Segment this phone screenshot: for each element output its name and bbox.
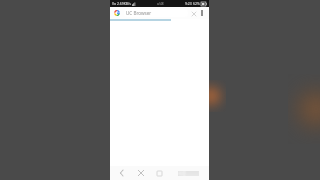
button[interactable]: Recent apps <box>150 166 169 180</box>
staticText: 62% <box>193 1 200 6</box>
button[interactable]: Google Search <box>113 9 121 17</box>
button[interactable]: Back <box>111 166 131 180</box>
button[interactable]: UC Browser <box>124 9 188 17</box>
staticText: 9:23 <box>185 1 192 6</box>
button[interactable]: More options <box>198 9 206 17</box>
staticText: a/48 <box>157 2 164 6</box>
button[interactable]: Home <box>131 166 150 180</box>
button[interactable]: Keyboard <box>169 166 208 180</box>
button[interactable]: Clear <box>189 9 198 18</box>
staticText: UC Browser <box>126 10 152 16</box>
staticText: Vo 2.69KB/s <box>112 1 131 6</box>
